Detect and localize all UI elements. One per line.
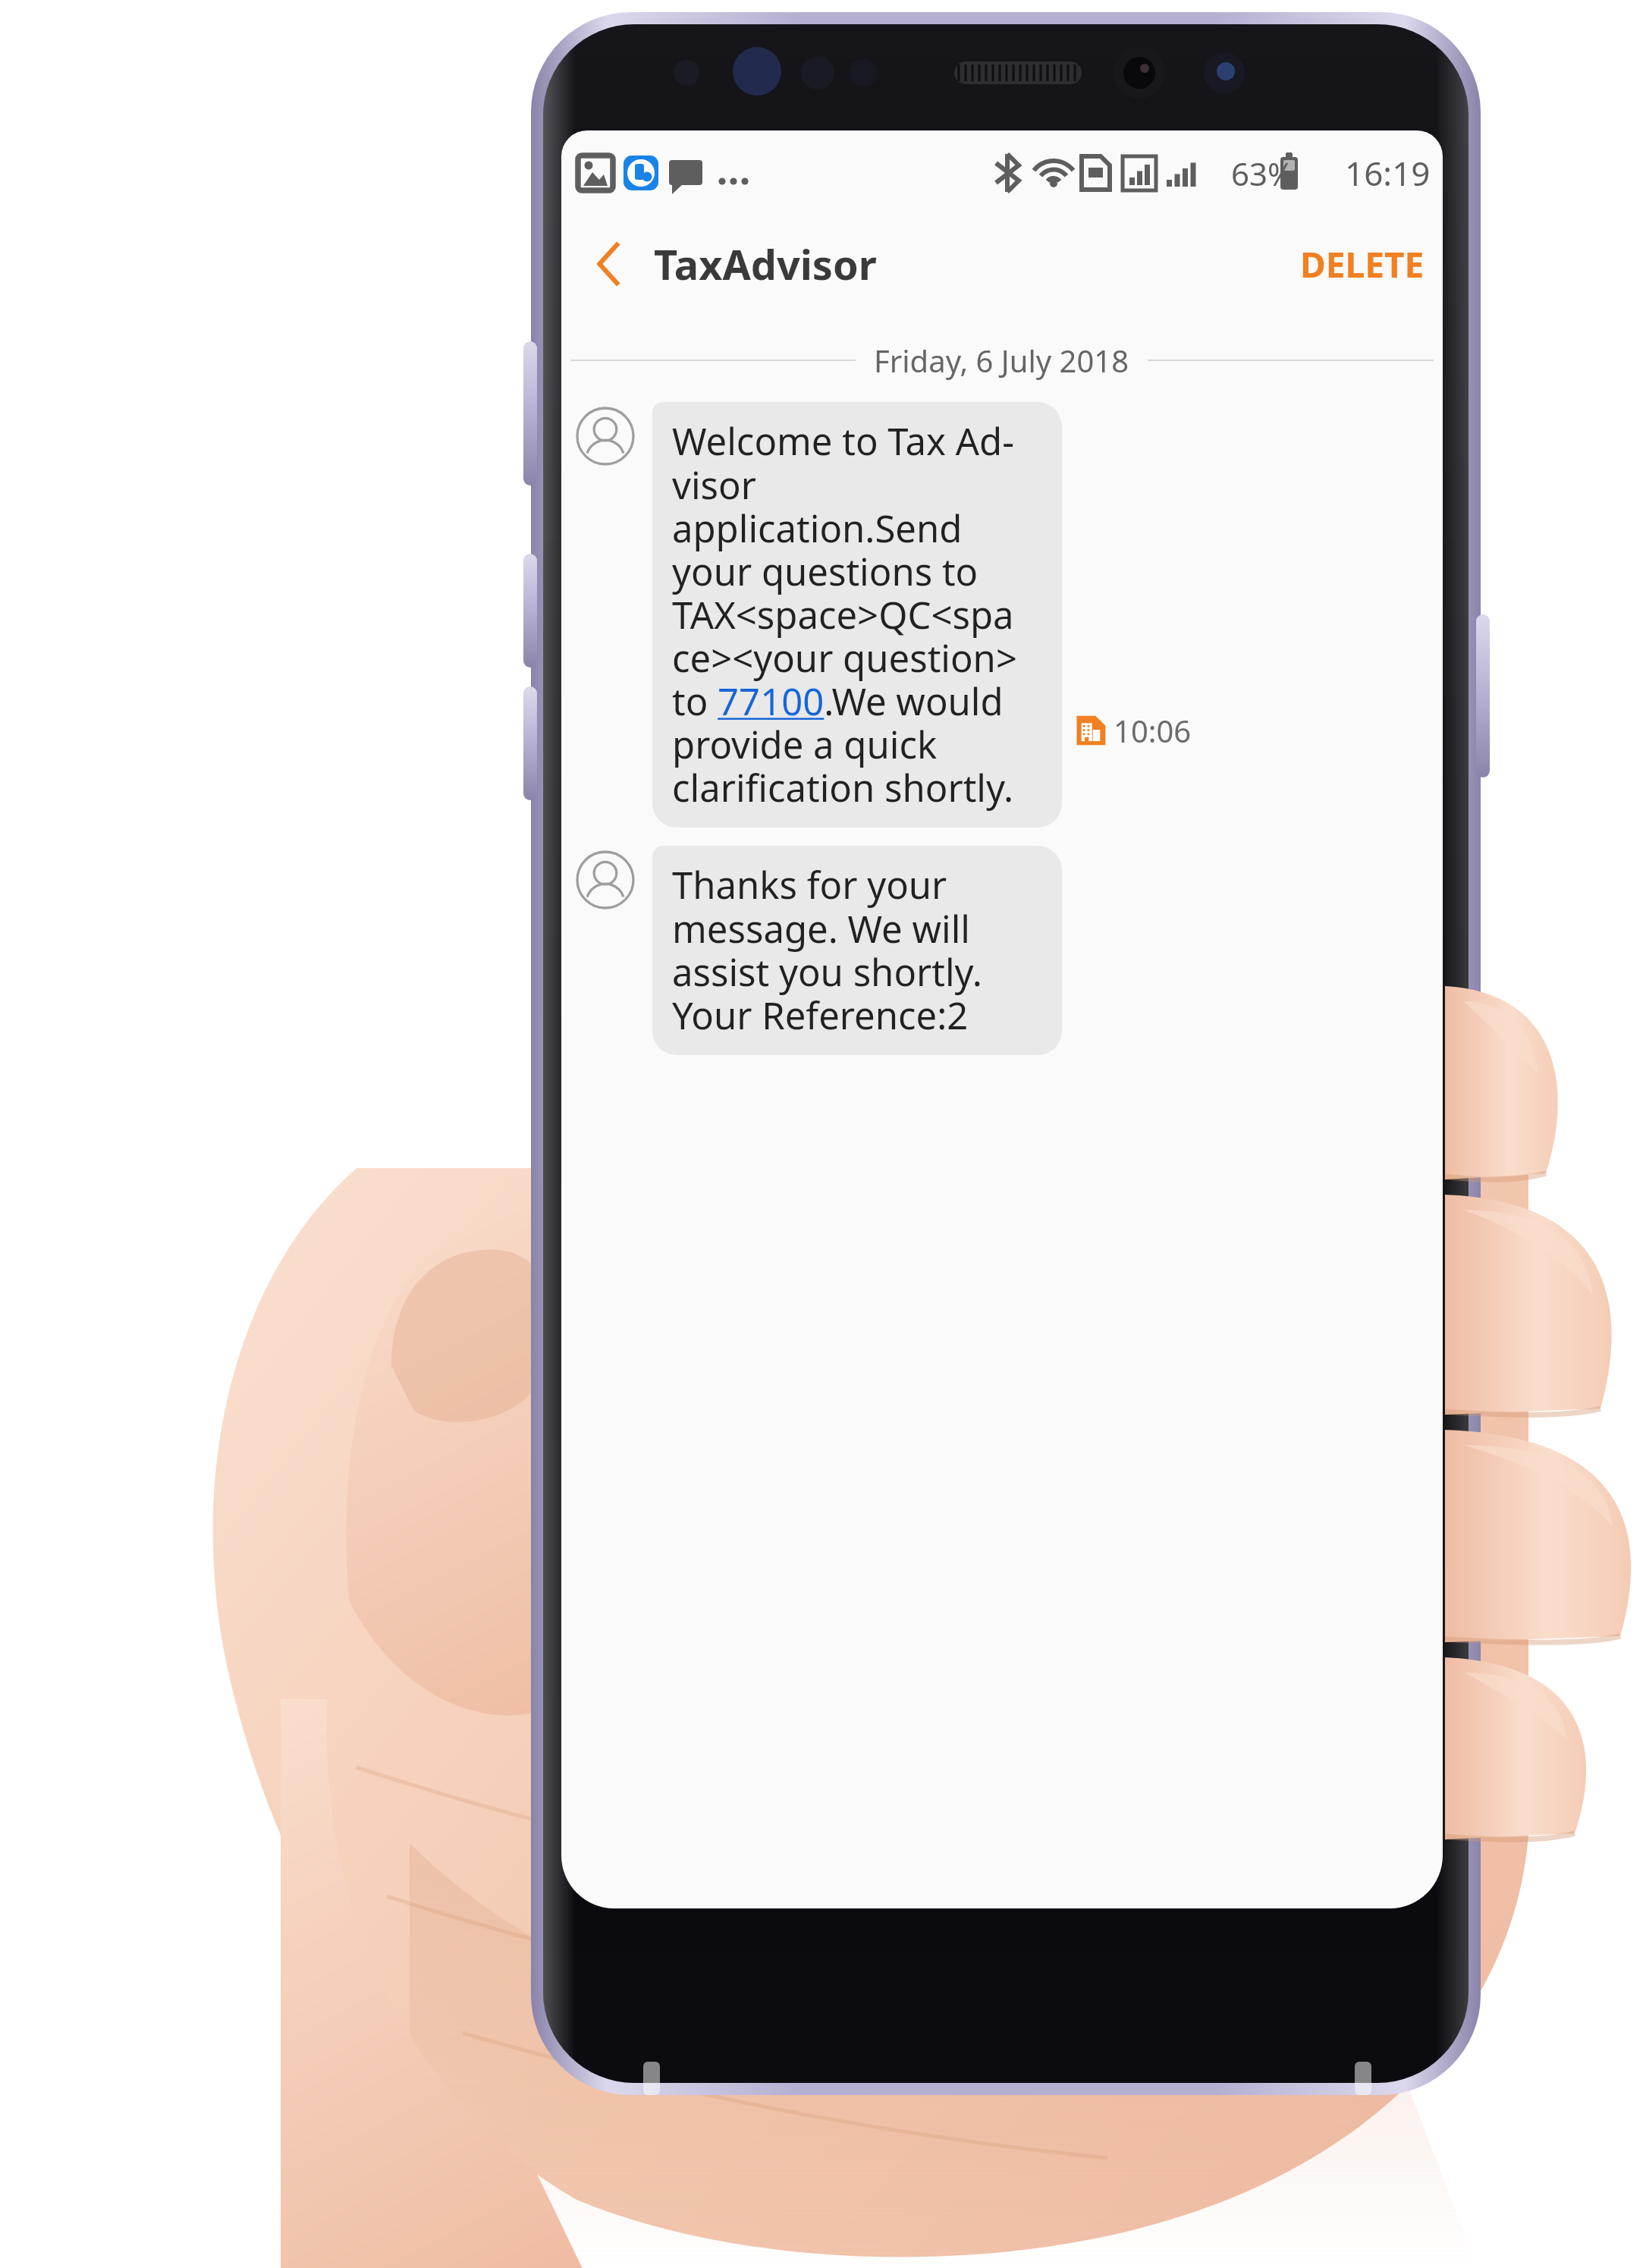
staticText: 16:19 — [1345, 150, 1431, 196]
staticText: Friday, 6 July 2018 — [874, 340, 1129, 381]
button[interactable]: Back — [578, 231, 643, 297]
staticText: TaxAdvisor — [654, 236, 877, 292]
button[interactable]: Welcome to Tax Ad- visor application.Sen… — [573, 402, 1432, 828]
staticText: 10:06 — [1114, 710, 1192, 751]
staticText: Thanks for your message. We will assist … — [672, 859, 982, 1040]
button[interactable]: DELETE — [1282, 230, 1443, 299]
button[interactable]: Thanks for your message. We will assist … — [573, 846, 1432, 1055]
staticText: 63% — [1231, 152, 1294, 195]
staticText: Welcome to Tax Ad- visor application.Sen… — [672, 416, 1048, 812]
staticText: DELETE — [1300, 240, 1425, 288]
